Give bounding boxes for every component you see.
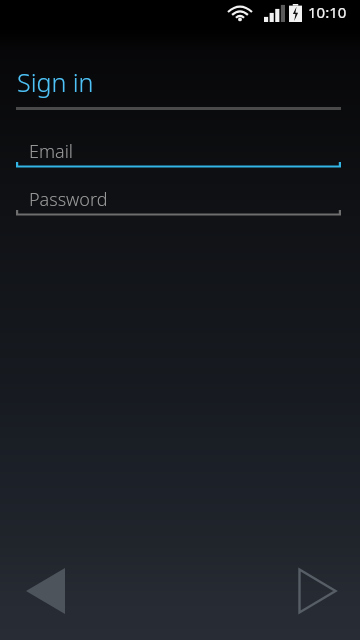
- staticText: Sign in: [17, 65, 94, 99]
- button[interactable]: Email: [16, 138, 341, 170]
- button[interactable]: Next: [286, 562, 348, 620]
- staticText: Email: [29, 139, 74, 164]
- staticText: 10:10: [308, 2, 347, 22]
- button[interactable]: Back: [14, 562, 76, 620]
- button[interactable]: Password: [16, 186, 341, 218]
- staticText: Password: [29, 187, 108, 212]
